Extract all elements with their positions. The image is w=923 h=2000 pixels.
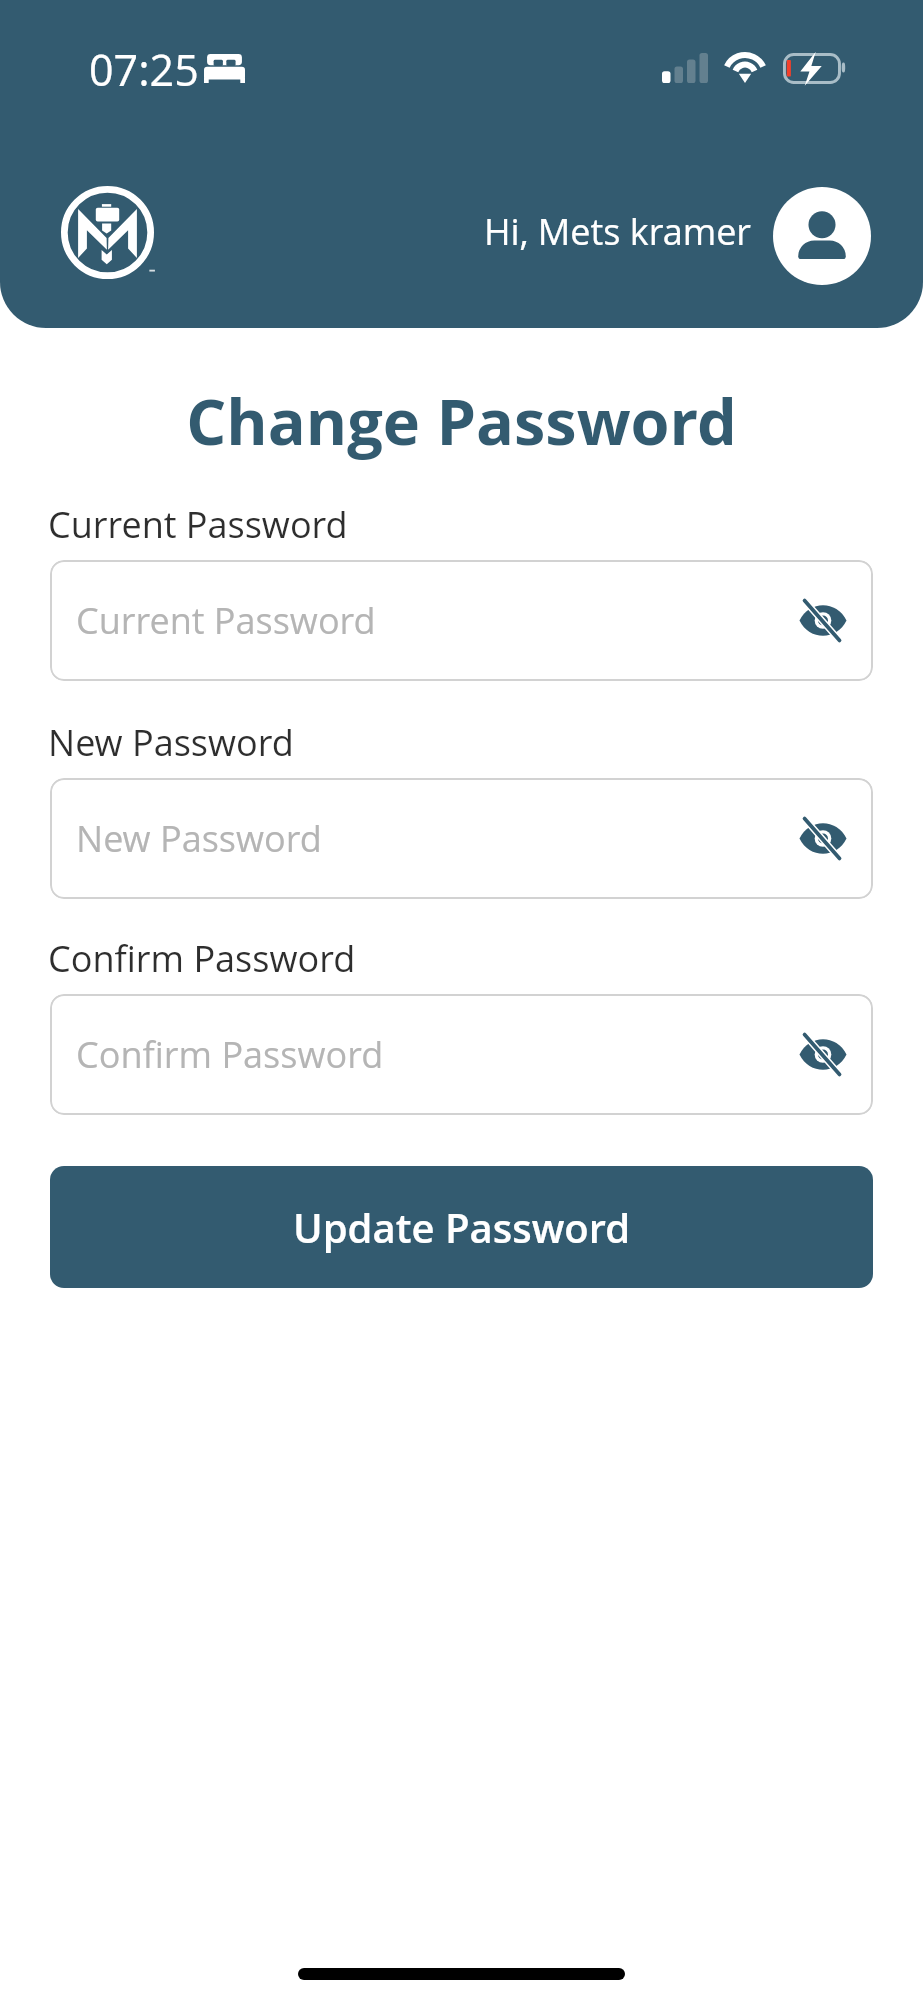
button[interactable]: New Password bbox=[50, 778, 873, 899]
staticText: Update Password bbox=[293, 1200, 631, 1254]
staticText: New Password bbox=[76, 814, 322, 863]
staticText: New Password bbox=[48, 718, 294, 767]
button[interactable]: Show password bbox=[799, 820, 847, 857]
staticText: Hi, Mets kramer bbox=[484, 207, 752, 256]
button[interactable]: Profile bbox=[773, 187, 871, 285]
button[interactable]: Show password bbox=[799, 1036, 847, 1073]
staticText: Confirm Password bbox=[76, 1030, 384, 1079]
button[interactable]: Update Password bbox=[50, 1166, 873, 1288]
button[interactable]: Confirm Password bbox=[50, 994, 873, 1115]
staticText: Confirm Password bbox=[48, 934, 356, 983]
button[interactable]: Show password bbox=[799, 602, 847, 639]
staticText: 07:25 bbox=[89, 40, 199, 99]
staticText: Change Password bbox=[0, 378, 923, 464]
staticText: Current Password bbox=[76, 596, 376, 645]
button[interactable]: Current Password bbox=[50, 560, 873, 681]
staticText: Current Password bbox=[48, 500, 348, 549]
